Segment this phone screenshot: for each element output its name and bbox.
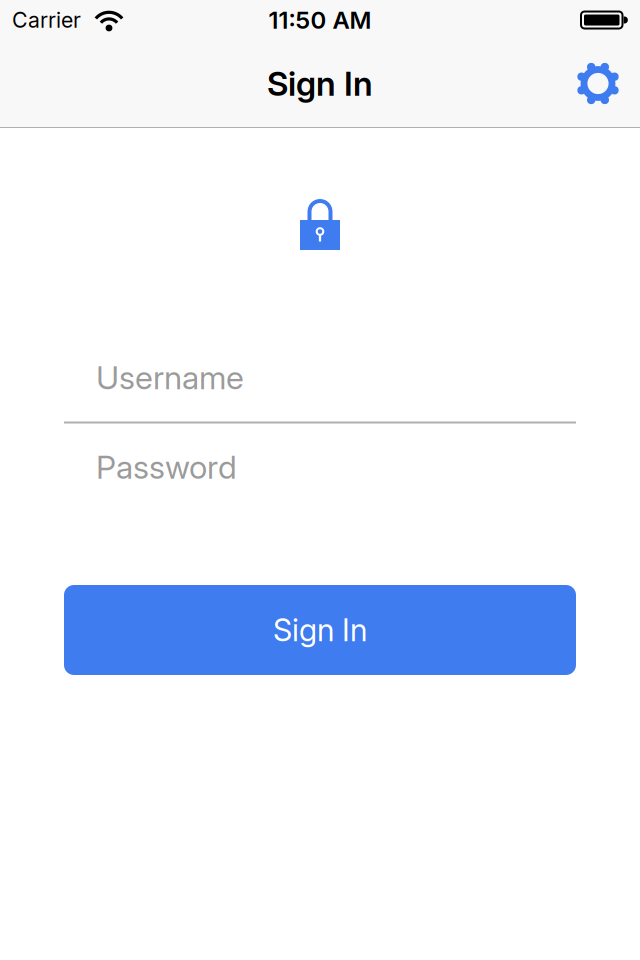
button[interactable]: Username xyxy=(64,347,576,407)
staticText: 11:50 AM xyxy=(268,6,371,34)
staticText: Sign In xyxy=(267,64,373,103)
staticText: Password xyxy=(96,448,237,486)
staticText: Username xyxy=(96,359,244,396)
button[interactable]: Password xyxy=(64,437,576,497)
staticText: Sign In xyxy=(273,612,367,648)
button[interactable]: Sign In xyxy=(64,585,576,675)
button[interactable] xyxy=(575,60,621,106)
staticText: Carrier xyxy=(12,7,81,33)
